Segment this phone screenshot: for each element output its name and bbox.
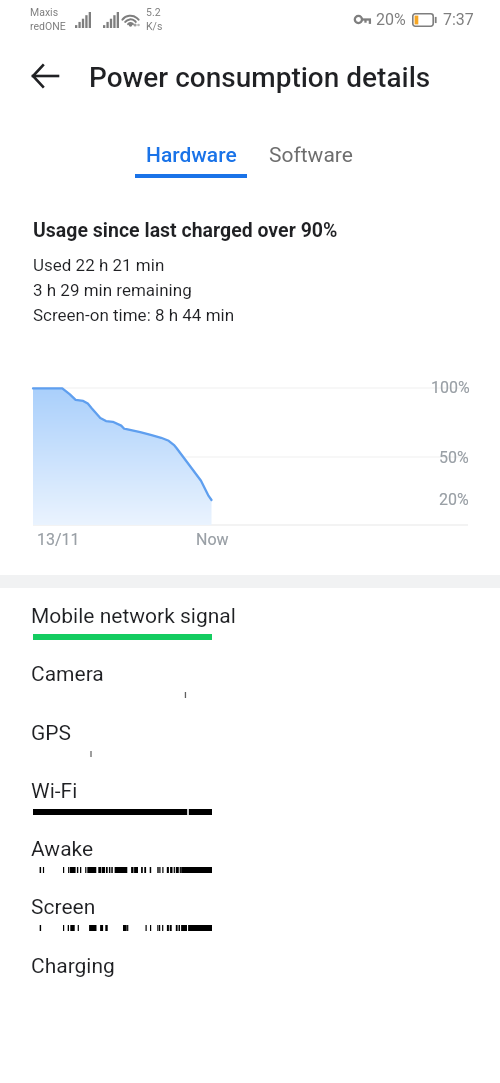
staticText: Screen: [31, 895, 96, 920]
staticText: 3 h 29 min remaining: [33, 280, 192, 300]
button[interactable]: Screen: [0, 885, 500, 943]
staticText: Power consumption details: [89, 61, 431, 94]
staticText: 100%: [431, 378, 470, 397]
staticText: GPS: [31, 721, 72, 746]
button[interactable]: Wi-Fi: [0, 769, 500, 827]
staticText: 20%: [376, 10, 406, 29]
staticText: Usage since last charged over 90%: [33, 219, 338, 242]
staticText: Software: [269, 143, 353, 168]
staticText: K/s: [146, 20, 163, 32]
button[interactable]: Back: [23, 54, 67, 98]
staticText: Now: [196, 530, 229, 549]
button[interactable]: Camera: [0, 652, 500, 710]
staticText: Mobile network signal: [31, 604, 236, 629]
button[interactable]: Software: [256, 128, 366, 184]
staticText: Used 22 h 21 min: [33, 255, 165, 275]
button[interactable]: Charging: [0, 944, 500, 1002]
staticText: 50%: [439, 448, 469, 467]
staticText: Maxis: [30, 6, 59, 18]
staticText: 20%: [439, 490, 469, 509]
staticText: Camera: [31, 662, 104, 687]
button[interactable]: GPS: [0, 711, 500, 769]
staticText: 13/11: [37, 530, 80, 549]
button[interactable]: Hardware: [126, 128, 256, 184]
button[interactable]: Awake: [0, 827, 500, 885]
staticText: Awake: [31, 837, 94, 862]
staticText: 7:37: [443, 10, 474, 29]
staticText: Screen-on time: 8 h 44 min: [33, 305, 235, 325]
button[interactable]: Mobile network signal: [0, 594, 500, 652]
staticText: 5.2: [146, 6, 161, 18]
staticText: Charging: [31, 954, 115, 979]
staticText: Hardware: [146, 143, 237, 168]
staticText: redONE: [30, 20, 66, 32]
staticText: Wi-Fi: [31, 779, 78, 804]
